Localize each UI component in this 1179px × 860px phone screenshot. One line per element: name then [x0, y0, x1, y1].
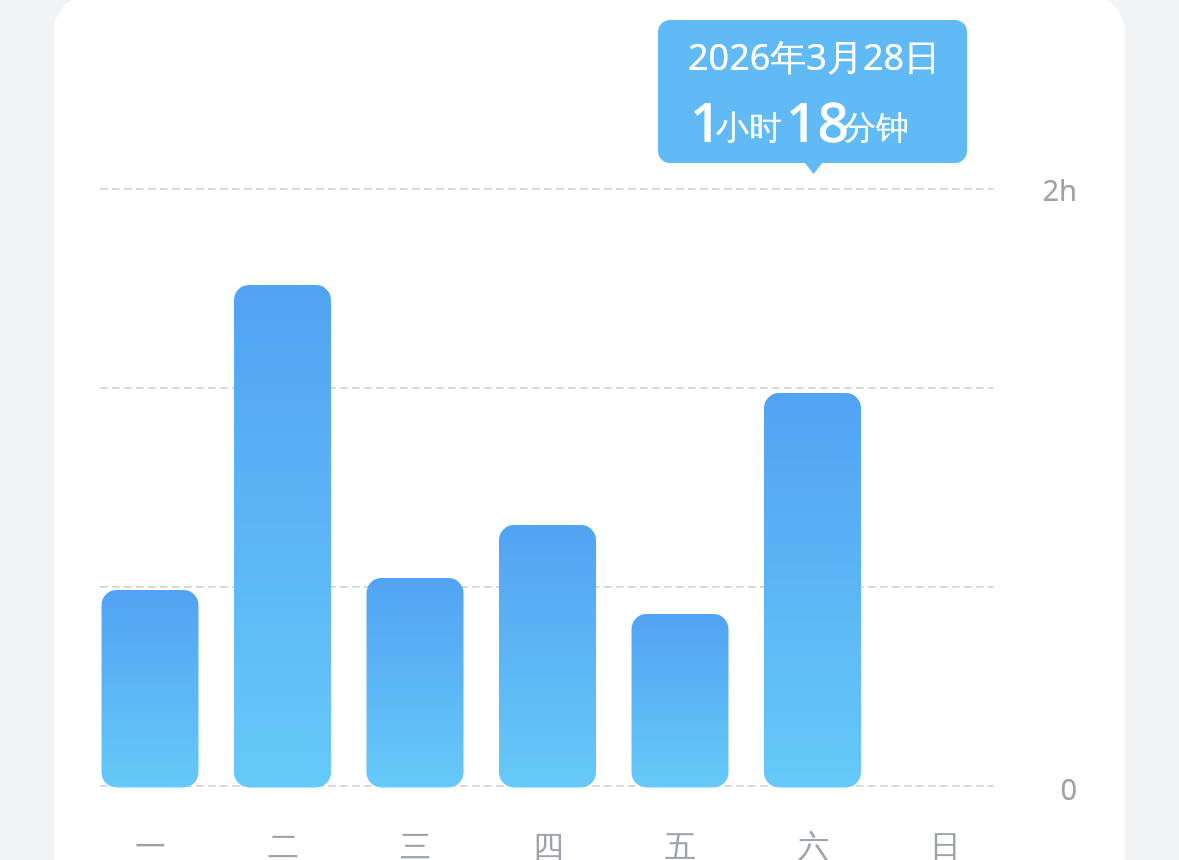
button[interactable]: 五: [635, 827, 725, 860]
button[interactable]: 2026年3月28日 1小时18分钟: [658, 20, 967, 163]
staticText: 三: [400, 827, 431, 860]
button[interactable]: 六: [768, 827, 858, 860]
button[interactable]: 一 的使用时长: [84, 190, 217, 788]
button[interactable]: 五 的使用时长: [614, 190, 747, 788]
staticText: 二: [268, 827, 299, 860]
staticText: 18: [786, 83, 849, 158]
staticText: 五: [665, 827, 696, 860]
button[interactable]: 四 的使用时长: [481, 190, 614, 788]
staticText: 分钟: [843, 107, 909, 149]
staticText: 0: [1017, 769, 1077, 808]
button[interactable]: 三 的使用时长: [349, 190, 482, 788]
staticText: 日: [930, 827, 961, 860]
staticText: 2h: [1017, 170, 1077, 209]
button[interactable]: 六 的使用时长: [746, 190, 879, 788]
button[interactable]: 三: [370, 827, 460, 860]
button[interactable]: 四: [503, 827, 593, 860]
button[interactable]: 日: [900, 827, 990, 860]
staticText: 四: [533, 827, 564, 860]
staticText: 一: [135, 827, 166, 860]
button[interactable]: 二 的使用时长: [216, 190, 349, 788]
staticText: 2026年3月28日: [688, 32, 941, 81]
staticText: 六: [798, 827, 829, 860]
button[interactable]: 一: [105, 827, 195, 860]
staticText: 1: [690, 83, 722, 158]
staticText: 小时: [716, 107, 782, 149]
button[interactable]: 二: [238, 827, 328, 860]
